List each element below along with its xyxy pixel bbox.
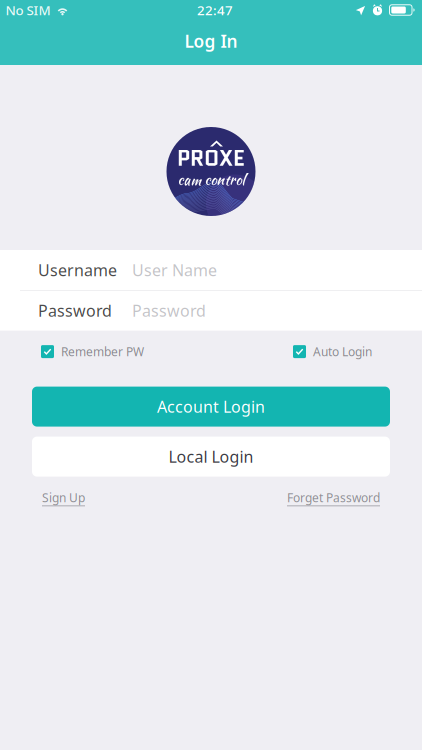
- staticText: cam control: [177, 170, 244, 190]
- staticText: Sign Up: [42, 490, 85, 505]
- staticText: Forget Password: [287, 490, 380, 505]
- staticText: Local Login: [168, 446, 253, 467]
- staticText: No SIM: [5, 1, 50, 19]
- button[interactable]: Forget Password: [287, 490, 380, 506]
- staticText: Account Login: [157, 396, 265, 417]
- staticText: PROXE: [177, 143, 245, 174]
- staticText: 22:47: [197, 1, 233, 19]
- staticText: Password: [132, 300, 206, 321]
- staticText: User Name: [132, 259, 217, 281]
- button[interactable]: Auto Login: [293, 344, 372, 359]
- button[interactable]: Local Login: [32, 437, 390, 477]
- button[interactable]: Account Login: [32, 387, 390, 427]
- staticText: Remember PW: [61, 344, 144, 359]
- button[interactable]: Remember PW: [41, 344, 144, 359]
- staticText: Password: [38, 300, 112, 321]
- button[interactable]: Sign Up: [42, 490, 85, 506]
- staticText: Auto Login: [313, 344, 372, 359]
- staticText: Log In: [184, 29, 237, 52]
- staticText: Username: [38, 259, 117, 281]
